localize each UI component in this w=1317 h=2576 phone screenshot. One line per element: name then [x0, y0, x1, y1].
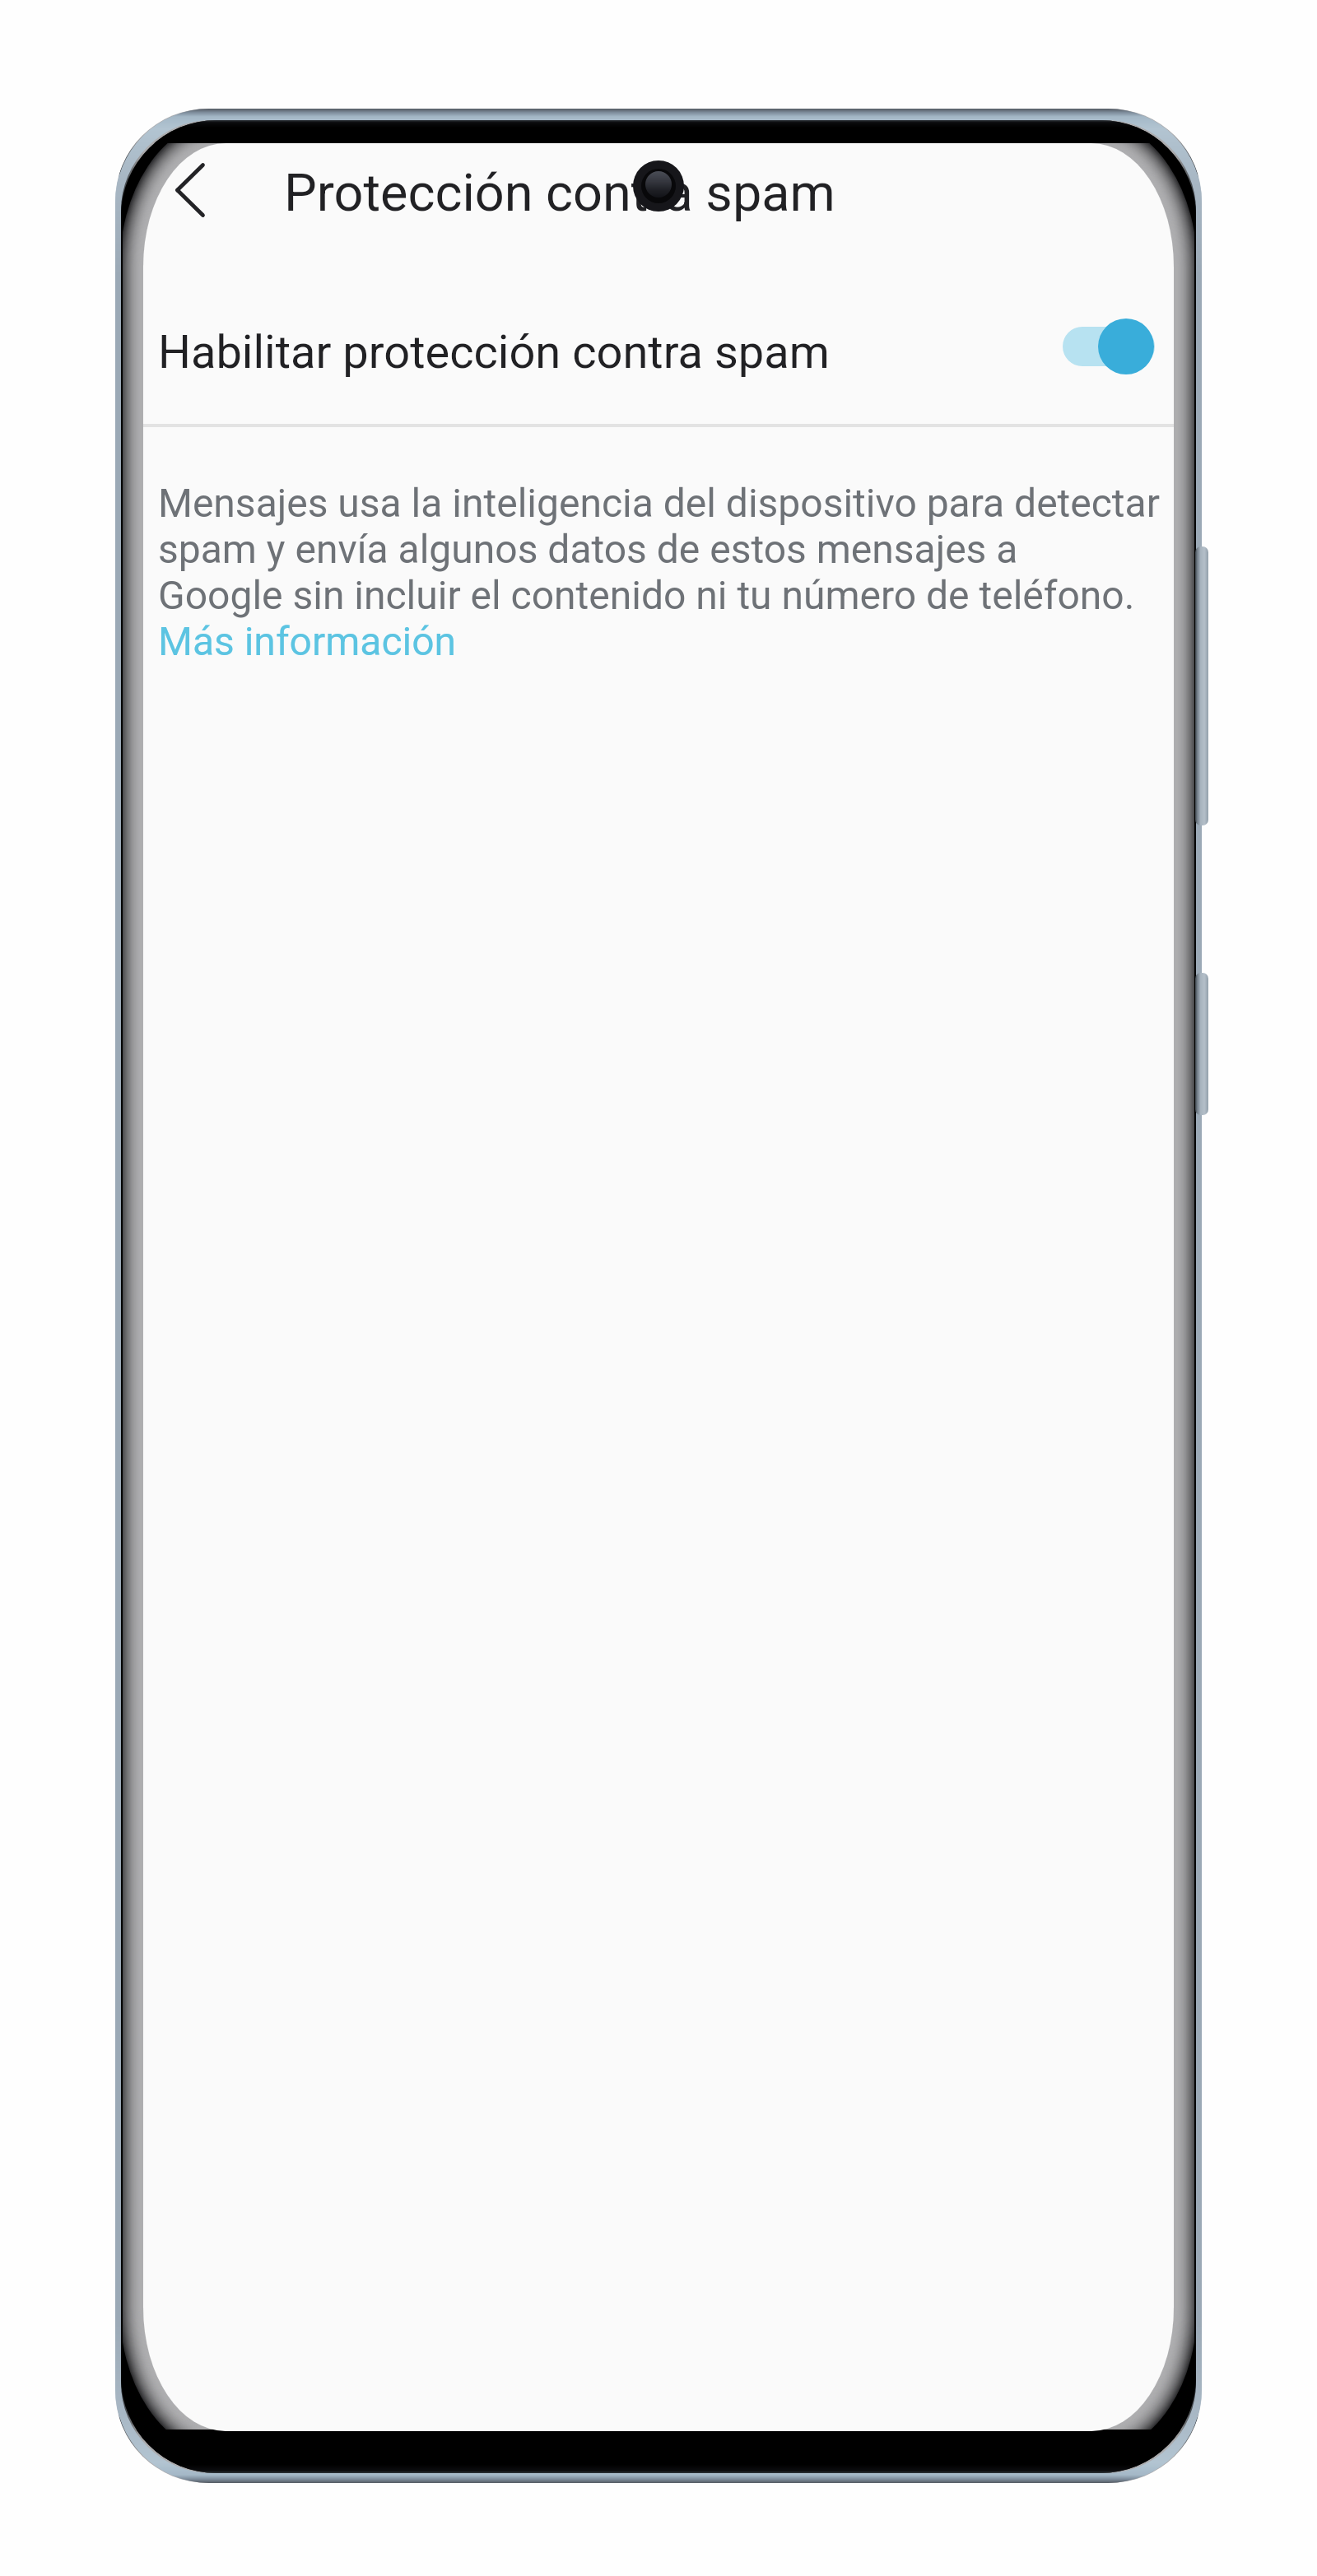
staticText: Más información — [158, 619, 457, 665]
button[interactable]: Habilitar protección contra spam — [143, 277, 1174, 416]
staticText: Habilitar protección contra spam — [158, 325, 830, 379]
button[interactable]: Más información — [158, 619, 457, 665]
button[interactable]: Back — [143, 143, 227, 239]
staticText: Protección contra spam — [284, 162, 835, 223]
staticText: Mensajes usa la inteligencia del disposi… — [158, 481, 1160, 619]
